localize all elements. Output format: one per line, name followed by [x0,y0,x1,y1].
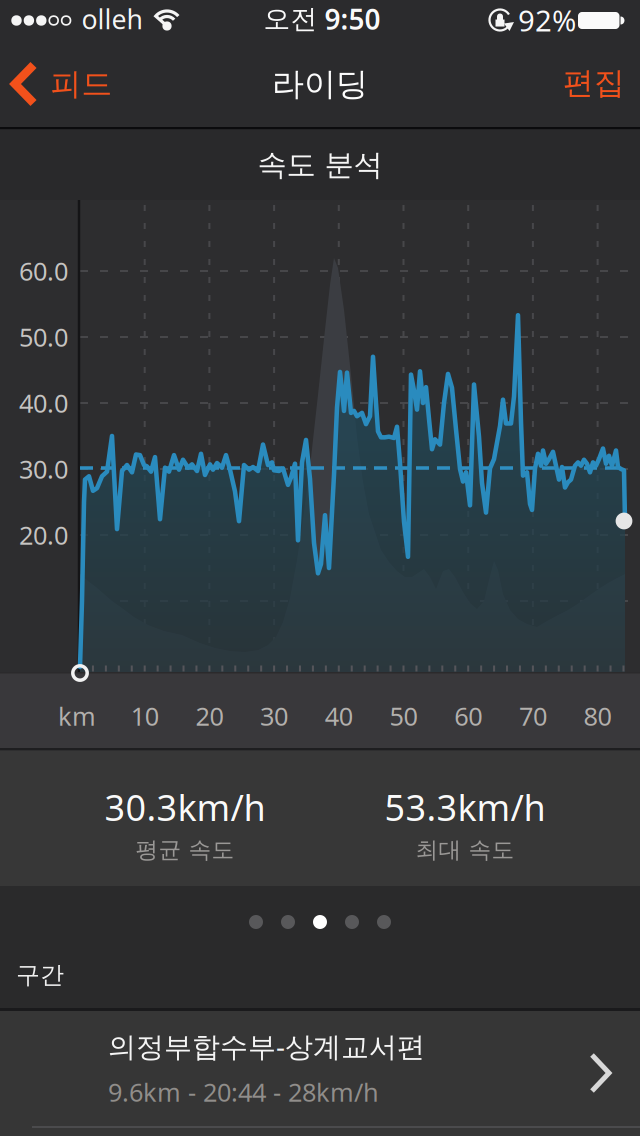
staticText: 20 [195,699,223,733]
staticText: 92% [518,0,576,39]
staticText: 30.3km/h [104,783,265,831]
staticText: 의정부합수부-상계교서편 [108,1027,425,1065]
staticText: olleh [81,1,142,37]
staticText: 9.6km - 20:44 - 28km/h [108,1075,379,1109]
staticText: 60.0 [19,254,68,288]
staticText: 50.0 [19,320,68,354]
staticText: 피드 [50,65,112,103]
staticText: 최대 속도 [415,836,514,864]
staticText: km [58,699,96,733]
staticText: 60 [454,699,482,733]
staticText: 53.3km/h [384,783,545,831]
staticText: 편집 [563,64,625,102]
staticText: 30 [260,699,288,733]
staticText: 오전 [263,3,317,35]
staticText: 10 [131,699,159,733]
staticText: 70 [519,699,547,733]
button[interactable]: 피드 [11,63,112,105]
staticText: 30.0 [19,452,68,486]
staticText: 40 [325,699,353,733]
staticText: 평균 속도 [135,836,234,864]
staticText: 라이딩 [272,64,368,104]
button[interactable]: 편집 [563,64,625,102]
staticText: 구간 [16,960,64,990]
staticText: 50 [389,699,417,733]
staticText: 9:50 [324,0,380,38]
staticText: 40.0 [19,386,68,420]
staticText: 80 [584,699,612,733]
staticText: 20.0 [19,518,68,552]
button[interactable]: 의정부합수부-상계교서편 [0,1011,640,1136]
staticText: 속도 분석 [257,147,382,183]
